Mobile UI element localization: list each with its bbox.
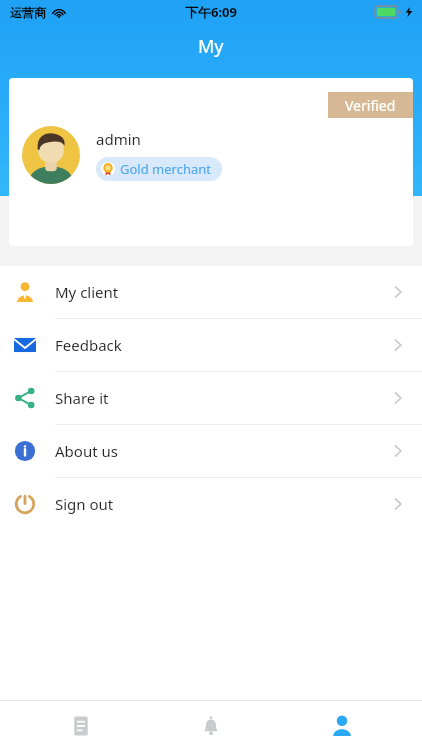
staticText: Gold merchant — [120, 160, 211, 178]
staticText: Share it — [55, 388, 390, 408]
staticText: My client — [55, 282, 390, 302]
button[interactable]: About us — [0, 425, 422, 477]
staticText: 下午6:09 — [185, 3, 237, 21]
button[interactable]: Feedback — [0, 319, 422, 371]
staticText: 运营商 — [10, 5, 46, 20]
staticText: Verified — [345, 96, 396, 115]
staticText: My — [198, 34, 224, 59]
button[interactable]: Profile — [292, 701, 392, 750]
staticText: Sign out — [55, 494, 390, 514]
button[interactable]: Verified — [328, 92, 413, 118]
button[interactable]: Sign out — [0, 478, 422, 530]
button[interactable]: Notifications — [161, 701, 261, 750]
staticText: About us — [55, 441, 390, 461]
button[interactable]: Gold merchant — [101, 160, 211, 178]
button[interactable]: Verified — [9, 78, 413, 246]
staticText: admin — [96, 129, 141, 149]
staticText: Feedback — [55, 335, 390, 355]
button[interactable]: List — [31, 701, 131, 750]
button[interactable]: Share it — [0, 372, 422, 424]
button[interactable]: My client — [0, 266, 422, 318]
